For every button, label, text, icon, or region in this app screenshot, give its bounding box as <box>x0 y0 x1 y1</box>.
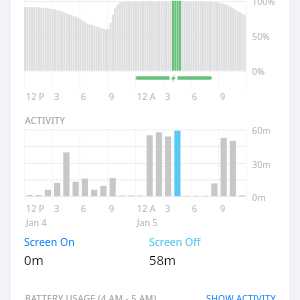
staticText: 12 A <box>137 90 156 102</box>
staticText: 58m <box>149 251 177 269</box>
staticText: 6 <box>192 90 198 102</box>
staticText: 60m <box>252 124 271 136</box>
staticText: 12 P <box>26 90 45 102</box>
staticText: Screen On <box>24 235 75 249</box>
staticText: 9 <box>109 202 115 214</box>
staticText: 3 <box>54 202 60 214</box>
staticText: 0m <box>24 251 44 269</box>
staticText: 6 <box>81 202 87 214</box>
staticText: Jan 4 <box>26 216 47 228</box>
staticText: 3 <box>54 90 60 102</box>
button[interactable]: Screen Off <box>149 235 201 269</box>
staticText: Jan 5 <box>137 216 158 228</box>
button[interactable]: SHOW ACTIVITY <box>206 292 276 300</box>
staticText: 6 <box>81 90 87 102</box>
staticText: 50% <box>252 30 270 42</box>
staticText: BATTERY USAGE (4 AM - 5 AM) <box>25 292 157 300</box>
staticText: 0m <box>252 191 266 203</box>
staticText: SHOW ACTIVITY <box>206 292 276 300</box>
staticText: 9 <box>220 90 226 102</box>
staticText: 9 <box>220 202 226 214</box>
staticText: 12 A <box>137 202 156 214</box>
button[interactable]: Screen On <box>24 235 75 269</box>
staticText: 12 P <box>26 202 45 214</box>
staticText: 30m <box>252 158 271 170</box>
staticText: Screen Off <box>149 235 201 249</box>
staticText: 6 <box>192 202 198 214</box>
staticText: ACTIVITY <box>25 114 66 126</box>
staticText: 3 <box>165 90 171 102</box>
staticText: 100% <box>252 0 275 7</box>
staticText: 0% <box>252 65 265 77</box>
staticText: 3 <box>165 202 171 214</box>
staticText: 9 <box>109 90 115 102</box>
